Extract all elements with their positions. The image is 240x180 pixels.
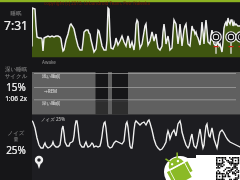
staticText: ノイズ 25% [41,116,65,122]
staticText: 1:06 2x [0,94,32,103]
staticText: サイクル [0,73,32,80]
staticText: Awake [42,59,56,65]
staticText: 25% [0,143,32,157]
staticText: →REM [44,88,58,94]
staticText: 深い睡眠 [42,101,61,107]
staticText: 15% [0,80,32,94]
staticText: copyright (c) 2013, Urbandroid Team, Pet… [44,0,151,6]
staticText: ノイズ [0,130,32,137]
staticText: 7:31 [0,17,32,33]
staticText: 浅い睡眠 [42,74,61,80]
staticText: 量 [0,137,32,143]
staticText: 深い睡眠 [0,66,32,73]
staticText: 睡眠 [0,10,32,17]
